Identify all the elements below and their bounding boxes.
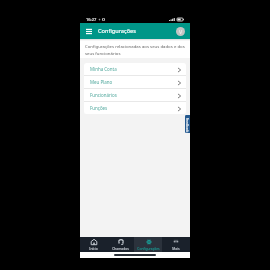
button[interactable]: Minha Conta: [84, 63, 186, 75]
staticText: 16:27: [86, 17, 97, 22]
staticText: Minha Conta: [90, 66, 117, 72]
button[interactable]: Feedback: [185, 115, 190, 133]
button[interactable]: Menu: [84, 27, 93, 36]
staticText: Configurações relacionadas aos seus dado…: [85, 43, 185, 56]
staticText: Meu Plano: [90, 79, 113, 85]
staticText: Configurações: [137, 246, 160, 250]
button[interactable]: Perfil: [176, 27, 185, 36]
button[interactable]: Início: [80, 237, 107, 252]
button[interactable]: Configurações: [134, 237, 162, 252]
staticText: Feedback: [185, 117, 189, 132]
staticText: Funções: [90, 105, 108, 111]
button[interactable]: Funções: [84, 102, 186, 114]
staticText: Funcionários: [90, 92, 117, 98]
staticText: V: [179, 28, 183, 35]
button[interactable]: Funcionários: [84, 89, 186, 101]
staticText: Chamados: [112, 246, 129, 250]
button[interactable]: Meu Plano: [84, 76, 186, 88]
button[interactable]: Chamados: [107, 237, 134, 252]
button[interactable]: Mais: [162, 237, 190, 252]
staticText: Mais: [172, 246, 180, 250]
staticText: Configurações: [98, 27, 136, 35]
staticText: Início: [89, 246, 98, 250]
